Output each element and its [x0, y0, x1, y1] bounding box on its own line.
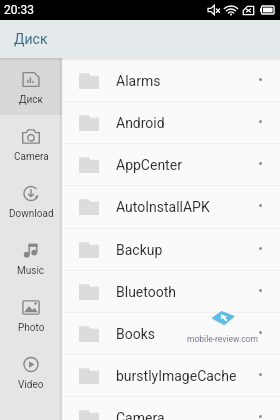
staticText: Android	[116, 115, 248, 131]
staticText: 20:33	[4, 3, 34, 17]
button[interactable]: AutoInstallAPK	[62, 186, 280, 228]
staticText: Alarms	[116, 73, 248, 89]
button[interactable]: More options	[248, 322, 272, 346]
button[interactable]: More options	[248, 406, 272, 420]
staticText: mobile-review.com	[187, 334, 258, 344]
staticText: Music	[17, 265, 45, 277]
staticText: Download	[9, 208, 54, 220]
button[interactable]: Photo	[0, 286, 62, 343]
button[interactable]: More options	[248, 195, 272, 219]
button[interactable]: AppCenter	[62, 144, 280, 186]
button[interactable]: Download	[0, 172, 62, 229]
staticText: AutoInstallAPK	[116, 199, 248, 215]
button[interactable]: Диск	[0, 58, 62, 115]
staticText: Video	[18, 379, 44, 391]
staticText: Books	[116, 326, 248, 342]
button[interactable]: Video	[0, 343, 62, 400]
staticText: Bluetooth	[116, 284, 248, 300]
button[interactable]: Bluetooth	[62, 271, 280, 313]
button[interactable]: Backup	[62, 229, 280, 271]
staticText: Диск	[14, 31, 48, 47]
staticText: Photo	[18, 322, 45, 334]
button[interactable]: Диск	[0, 20, 280, 58]
staticText: Диск	[19, 94, 43, 106]
staticText: Camera	[14, 151, 49, 163]
button[interactable]: Music	[0, 229, 62, 286]
button[interactable]: Android	[62, 102, 280, 144]
button[interactable]: burstlyImageCache	[62, 355, 280, 397]
button[interactable]: More options	[248, 111, 272, 135]
staticText: Camera	[116, 410, 248, 420]
staticText: AppCenter	[116, 157, 248, 173]
button[interactable]: Books	[62, 313, 280, 355]
button[interactable]: More options	[248, 69, 272, 93]
staticText: Backup	[116, 242, 248, 258]
button[interactable]: More options	[248, 364, 272, 388]
button[interactable]: Alarms	[62, 60, 280, 102]
button[interactable]: More options	[248, 280, 272, 304]
button[interactable]: More options	[248, 153, 272, 177]
staticText: burstlyImageCache	[116, 368, 248, 384]
button[interactable]: More options	[248, 238, 272, 262]
button[interactable]: Camera	[62, 397, 280, 420]
button[interactable]: Camera	[0, 115, 62, 172]
